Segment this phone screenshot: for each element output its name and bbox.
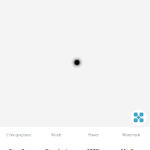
staticText: Charging base [6,132,31,137]
staticText: Power [88,132,99,137]
button[interactable]: Expand [131,110,146,125]
staticText: Standard [45,147,67,150]
button[interactable]: Mode [37,132,75,150]
button[interactable]: Watertank [112,132,150,150]
button[interactable]: Charging base [0,132,37,150]
staticText: Medium [121,147,142,150]
staticText: 100% [87,147,101,150]
staticText: Mode [51,132,61,137]
staticText: Standby [9,147,29,150]
button[interactable]: Power [75,132,112,150]
staticText: Watertank [122,132,140,137]
